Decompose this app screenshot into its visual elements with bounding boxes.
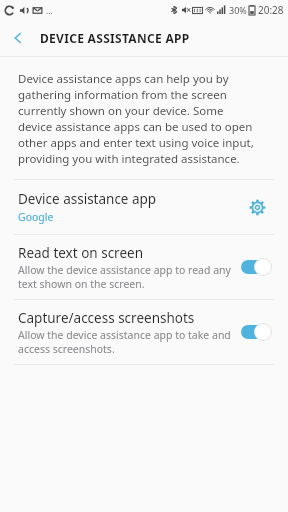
staticText: other apps and enter text using voice in… xyxy=(18,135,254,151)
staticText: Device assistance app xyxy=(18,190,157,208)
staticText: text shown on the screen. xyxy=(18,277,145,291)
staticText: device assistance apps can be used to op… xyxy=(18,119,253,135)
staticText: Allow the device assistance app to take … xyxy=(18,328,231,342)
staticText: Capture/access screenshots xyxy=(18,309,195,327)
staticText: gathering information from the screen xyxy=(18,87,227,103)
staticText: currently shown on your device. Some xyxy=(18,103,224,119)
staticText: DEVICE ASSISTANCE APP xyxy=(40,30,190,46)
staticText: ... xyxy=(46,5,53,16)
button[interactable]: Read text on screen xyxy=(0,235,288,299)
staticText: Device assistance apps can help you by xyxy=(18,71,229,87)
button[interactable]: Device assistance app xyxy=(0,180,288,234)
staticText: access screenshots. xyxy=(18,342,115,356)
button[interactable]: Back xyxy=(0,20,36,56)
staticText: Allow the device assistance app to read … xyxy=(18,263,231,277)
staticText: providing you with integrated assistance… xyxy=(18,151,240,167)
staticText: 30% xyxy=(229,4,247,16)
staticText: 20:28 xyxy=(258,3,284,17)
button[interactable]: Capture/access screenshots xyxy=(0,300,288,364)
staticText: Google xyxy=(18,210,54,224)
button[interactable]: Toggle xyxy=(240,256,274,278)
button[interactable]: Settings xyxy=(240,190,274,224)
staticText: Read text on screen xyxy=(18,244,143,262)
button[interactable]: Toggle xyxy=(240,321,274,343)
